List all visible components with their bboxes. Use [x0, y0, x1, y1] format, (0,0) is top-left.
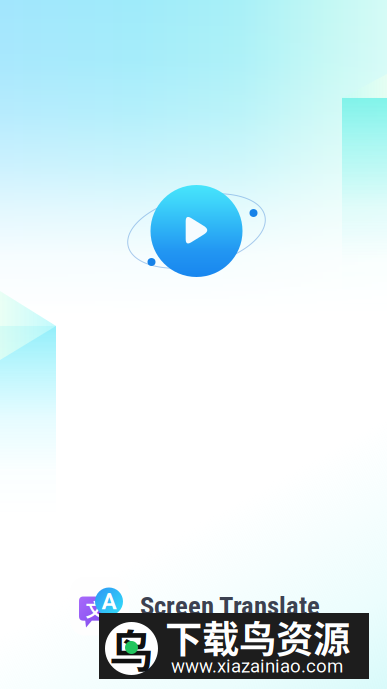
- staticText: 鸟: [109, 617, 153, 680]
- staticText: www.xiazainiao.com: [171, 655, 343, 677]
- staticText: 文: [85, 595, 104, 622]
- staticText: A: [101, 588, 116, 615]
- button[interactable]: 文: [70, 576, 330, 636]
- staticText: 下载鸟资源: [165, 610, 350, 664]
- staticText: Screen Translate: [140, 590, 320, 622]
